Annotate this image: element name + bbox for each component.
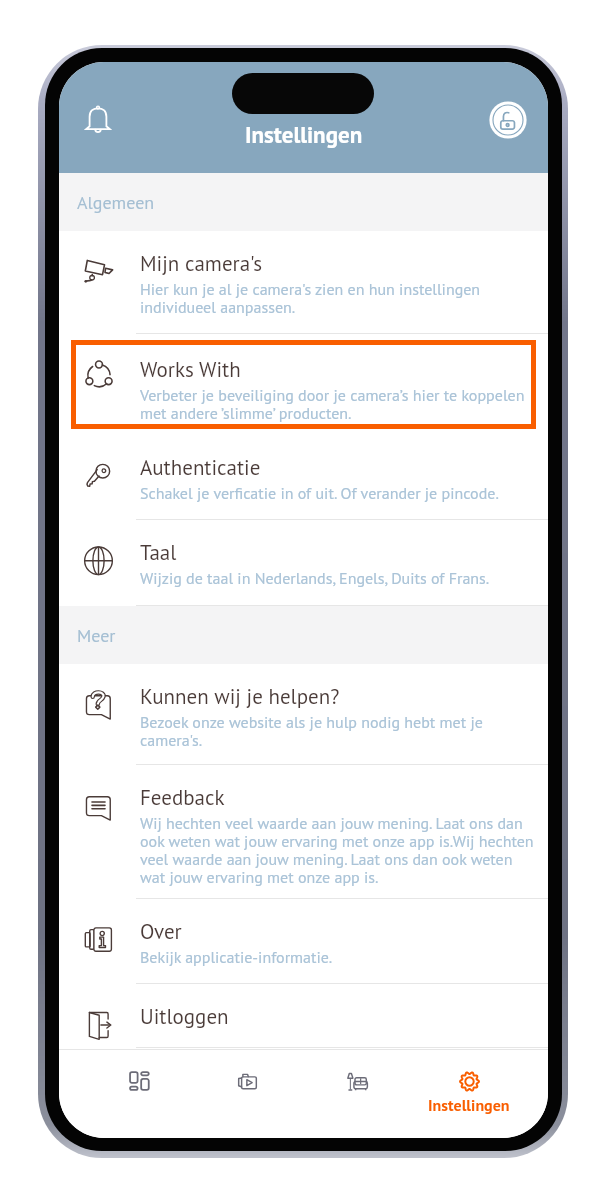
staticText: Mijn camera's	[140, 250, 263, 277]
staticText: Feedback	[140, 784, 225, 811]
staticText: Schakel je verficatie in of uit. Of vera…	[140, 483, 499, 504]
staticText: Hier kun je al je camera's zien en hun i…	[140, 279, 536, 318]
button[interactable]: Mijn camera's	[59, 231, 548, 334]
button[interactable]: Authenticatie	[59, 435, 548, 520]
button[interactable]: Over	[59, 899, 548, 984]
staticText: Meer	[77, 624, 116, 647]
staticText: Uitloggen	[140, 1003, 229, 1030]
button[interactable]: Unlock	[489, 101, 527, 139]
button[interactable]: Videos	[189, 1050, 306, 1138]
button[interactable]: Dashboard	[81, 1050, 198, 1138]
button[interactable]: Notifications	[84, 105, 112, 133]
button[interactable]: Feedback	[59, 765, 548, 899]
button[interactable]: Rooms	[299, 1050, 416, 1138]
staticText: Works With	[140, 356, 241, 383]
button[interactable]: Works With	[76, 345, 531, 424]
button[interactable]: Settings	[410, 1050, 527, 1138]
button[interactable]: Taal	[59, 520, 548, 606]
staticText: Verbeter je beveiliging door je camera’s…	[140, 385, 530, 424]
staticText: Algemeen	[77, 191, 155, 214]
staticText: Bekijk applicatie-informatie.	[140, 947, 333, 968]
button[interactable]: Kunnen wij je helpen?	[59, 664, 548, 765]
staticText: Wij hechten veel waarde aan jouw mening.…	[140, 813, 536, 888]
staticText: Taal	[140, 539, 177, 566]
button[interactable]: Uitloggen	[59, 984, 548, 1048]
staticText: Instellingen	[245, 120, 363, 150]
staticText: Wijzig de taal in Nederlands, Engels, Du…	[140, 568, 490, 589]
staticText: Authenticatie	[140, 454, 261, 481]
staticText: Instellingen	[428, 1095, 510, 1116]
staticText: Kunnen wij je helpen?	[140, 683, 340, 710]
staticText: Bezoek onze website als je hulp nodig he…	[140, 712, 536, 751]
staticText: Over	[140, 918, 182, 945]
